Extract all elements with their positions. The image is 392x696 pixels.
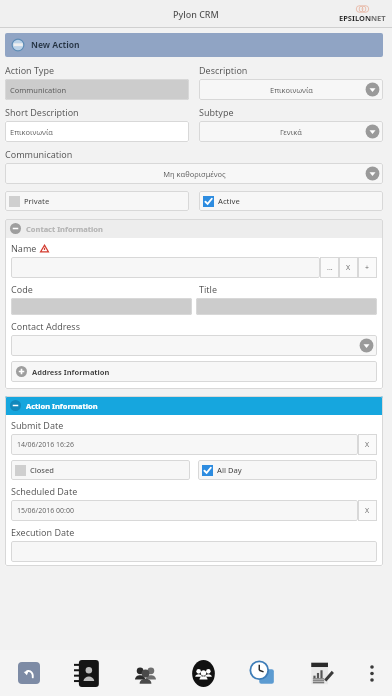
- button[interactable]: [11, 335, 377, 356]
- staticText: 15/06/2016 00:00: [17, 506, 74, 516]
- button[interactable]: All Day: [198, 460, 377, 480]
- staticText: NET: [371, 13, 386, 23]
- button[interactable]: Contact Information: [5, 219, 383, 238]
- button[interactable]: X: [358, 434, 377, 455]
- staticText: Short Description: [5, 106, 79, 118]
- button[interactable]: Reports: [292, 650, 351, 696]
- button[interactable]: [11, 541, 377, 562]
- button[interactable]: Calendar: [233, 650, 292, 696]
- staticText: Contact Information: [26, 224, 103, 234]
- button[interactable]: Private: [5, 191, 189, 211]
- button[interactable]: Communication: [5, 79, 189, 100]
- button[interactable]: Team: [174, 650, 233, 696]
- button[interactable]: Επικοινωνία: [199, 79, 383, 100]
- staticText: EPSILON: [339, 13, 371, 23]
- staticText: X: [365, 506, 370, 516]
- button[interactable]: ...: [320, 257, 339, 278]
- staticText: New Action: [31, 39, 80, 51]
- staticText: ...: [327, 263, 333, 273]
- button[interactable]: [196, 298, 377, 315]
- button[interactable]: 14/06/2016 16:26: [11, 434, 358, 455]
- button[interactable]: +: [358, 257, 377, 278]
- button[interactable]: 15/06/2016 00:00: [11, 500, 358, 521]
- button[interactable]: X: [358, 500, 377, 521]
- staticText: Action Information: [26, 401, 98, 411]
- staticText: Pylon CRM: [173, 8, 219, 20]
- button[interactable]: Closed: [11, 460, 190, 480]
- button[interactable]: Action Information: [5, 396, 383, 415]
- button[interactable]: Back: [0, 650, 58, 696]
- staticText: Contact Address: [11, 320, 80, 332]
- button[interactable]: More options: [351, 650, 392, 696]
- staticText: Επικοινωνία: [270, 85, 313, 95]
- button[interactable]: Address Information: [11, 361, 377, 382]
- staticText: Submit Date: [11, 419, 64, 431]
- staticText: +: [365, 263, 370, 273]
- button[interactable]: [11, 298, 192, 315]
- staticText: Subtype: [199, 106, 234, 118]
- staticText: Name: [11, 242, 37, 254]
- staticText: Description: [199, 64, 248, 76]
- staticText: Επικοινωνία: [10, 127, 53, 137]
- button[interactable]: Groups: [116, 650, 174, 696]
- button[interactable]: New Action: [5, 33, 383, 57]
- button[interactable]: Επικοινωνία: [5, 121, 189, 142]
- staticText: 14/06/2016 16:26: [17, 440, 74, 450]
- staticText: Title: [199, 283, 217, 295]
- staticText: Action Type: [5, 64, 55, 76]
- button[interactable]: [11, 257, 320, 278]
- staticText: Scheduled Date: [11, 485, 78, 497]
- staticText: Μη καθορισμένος: [163, 169, 226, 179]
- staticText: Active: [218, 196, 240, 206]
- button[interactable]: X: [339, 257, 358, 278]
- staticText: Communication: [5, 148, 73, 160]
- staticText: X: [346, 263, 351, 273]
- staticText: All Day: [217, 465, 242, 475]
- staticText: Execution Date: [11, 526, 75, 538]
- staticText: Private: [24, 196, 50, 206]
- button[interactable]: Γενικά: [199, 121, 383, 142]
- button[interactable]: Contacts: [58, 650, 116, 696]
- staticText: X: [365, 440, 370, 450]
- staticText: Code: [11, 283, 33, 295]
- button[interactable]: Active: [199, 191, 383, 211]
- button[interactable]: Μη καθορισμένος: [5, 163, 383, 184]
- staticText: Closed: [30, 465, 54, 475]
- staticText: Address Information: [32, 367, 110, 377]
- staticText: Communication: [10, 85, 67, 95]
- staticText: Γενικά: [280, 127, 302, 137]
